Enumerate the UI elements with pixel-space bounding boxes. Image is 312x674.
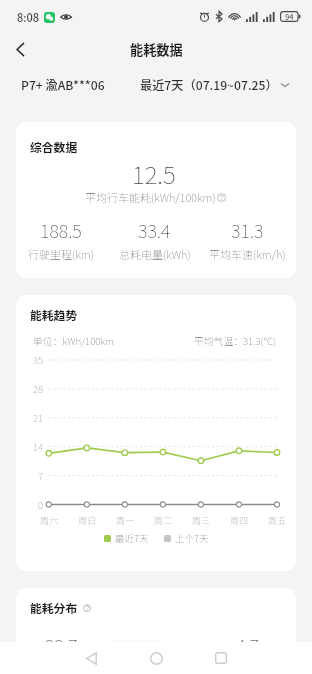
staticText: 周一 <box>116 514 135 527</box>
staticText: 能耗分布 <box>30 599 78 616</box>
staticText: 周三 <box>192 514 211 527</box>
staticText: 7 <box>38 469 43 483</box>
staticText: 21 <box>33 411 43 425</box>
staticText: 总耗电量(kWh) <box>119 246 191 262</box>
staticText: 平均行车能耗(kWh/100km) <box>85 189 216 205</box>
staticText: 周日 <box>78 514 97 527</box>
staticText: 94 <box>285 11 294 22</box>
staticText: 31.3 <box>231 217 264 243</box>
staticText: 12.5 <box>132 156 176 191</box>
staticText: 14 <box>33 440 43 454</box>
staticText: P7+ 渝AB***06 <box>21 76 105 94</box>
staticText: 综合数据 <box>30 138 78 155</box>
staticText: 4.7 <box>236 632 259 658</box>
staticText: 平均车速(km/h) <box>209 246 286 262</box>
staticText: 能耗数据 <box>130 40 183 59</box>
staticText: 最近7天（07.19~07.25） <box>140 76 278 94</box>
button[interactable]: Home <box>143 645 169 671</box>
staticText: 8:08 <box>17 9 40 25</box>
staticText: 35 <box>33 353 43 367</box>
staticText: 33.4 <box>138 217 171 243</box>
staticText: 28 <box>33 382 43 396</box>
button[interactable]: Recent apps <box>208 645 234 671</box>
staticText: 周二 <box>154 514 173 527</box>
staticText: 周五 <box>268 514 287 527</box>
staticText: 22.7 <box>45 632 78 658</box>
button[interactable]: 能耗分布 <box>30 599 91 616</box>
staticText: 上个7天 <box>175 531 209 545</box>
staticText: 周六 <box>40 514 59 527</box>
button[interactable]: 最近7天（07.19~07.25） <box>140 76 290 94</box>
staticText: 平均气温：31.3(℃) <box>194 334 277 348</box>
staticText: 0 <box>38 498 43 512</box>
staticText: 行驶里程(km) <box>28 246 94 262</box>
staticText: 最近7天 <box>115 531 149 545</box>
staticText: 单位：kWh/100km <box>33 334 114 348</box>
button[interactable]: P7+ 渝AB***06 <box>21 76 105 94</box>
button[interactable]: Back <box>78 645 104 671</box>
staticText: 周四 <box>230 514 249 527</box>
staticText: 能耗趋势 <box>30 306 78 323</box>
button[interactable]: Back <box>0 33 40 66</box>
staticText: 188.5 <box>40 217 82 243</box>
